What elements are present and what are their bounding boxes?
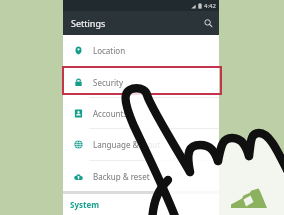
staticText: Language & input [93,139,161,150]
button[interactable]: Search [201,16,215,30]
button[interactable]: Location [63,35,219,66]
button[interactable]: Security highlighted [62,66,222,95]
staticText: Security [93,77,124,88]
button[interactable]: Accounts [63,98,219,128]
button[interactable]: Security [63,67,219,97]
button[interactable]: Language & input [63,129,219,160]
staticText: Backup & reset [93,171,150,182]
staticText: Settings [71,17,106,29]
staticText: 4:42 [204,2,216,10]
staticText: System [70,199,100,210]
staticText: Accounts [93,108,128,119]
button[interactable]: Backup & reset [63,161,219,191]
staticText: Location [93,45,126,56]
